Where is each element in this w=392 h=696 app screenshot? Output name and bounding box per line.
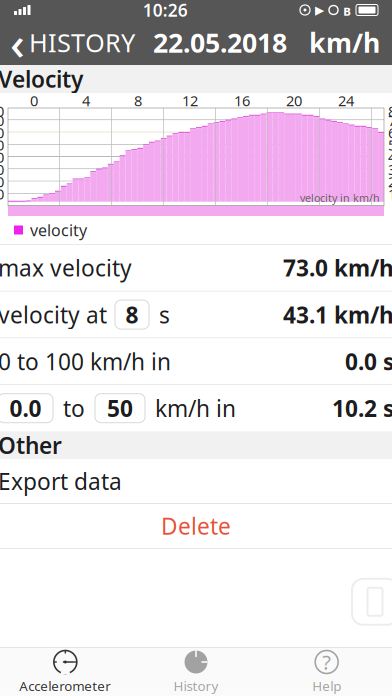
staticText: 20 (286, 91, 302, 110)
staticText: History (173, 677, 218, 695)
button[interactable]: History (131, 648, 261, 696)
staticText: km/h (309, 25, 380, 60)
staticText: HISTORY (29, 26, 135, 59)
staticText: 10.2 s (332, 393, 392, 423)
button[interactable]: km/h (297, 20, 392, 64)
staticText: Help (312, 677, 341, 695)
staticText: 24 (338, 91, 354, 110)
staticText: max velocity (0, 253, 132, 283)
staticText: 80 (0, 101, 4, 121)
staticText: ▶ (315, 3, 324, 17)
button[interactable]: 8 (115, 300, 149, 329)
button[interactable]: Export data (0, 459, 392, 503)
staticText: 16 (234, 91, 250, 110)
staticText: km/h in (155, 393, 236, 423)
staticText: 0.0 (9, 393, 41, 423)
staticText: velocity (30, 219, 87, 241)
staticText: ʙ (343, 0, 351, 20)
staticText: 50 (0, 135, 4, 154)
staticText: Export data (0, 466, 122, 496)
staticText: ‹ (10, 12, 25, 73)
staticText: Delete (161, 511, 231, 541)
staticText: 0.0 s (345, 346, 392, 376)
staticText: 60 (388, 123, 392, 142)
staticText: 10 (0, 184, 4, 203)
staticText: 43.1 km/h (283, 299, 392, 330)
staticText: 40 (0, 147, 4, 167)
staticText: Accelerometer (19, 677, 111, 695)
staticText: to (63, 393, 85, 423)
button[interactable]: Delete (0, 504, 392, 548)
staticText: 0 to 100 km/h in (0, 346, 171, 376)
staticText: 70 (388, 110, 392, 130)
staticText: 80 (388, 101, 392, 121)
staticText: 12 (182, 91, 198, 110)
staticText: 20 (388, 172, 392, 191)
staticText: 30 (0, 159, 4, 179)
staticText: 10 (388, 184, 392, 203)
staticText: 20 (0, 172, 4, 191)
staticText: 30 (388, 159, 392, 179)
staticText: 60 (0, 123, 4, 142)
staticText: 10:26 (143, 0, 188, 21)
staticText: 22.05.2018 (153, 25, 287, 60)
button[interactable]: ‹ (0, 20, 143, 64)
button[interactable]: 0.0 (0, 394, 53, 423)
staticText: 40 (388, 147, 392, 167)
staticText: velocity in km/h (300, 191, 380, 205)
staticText: 8 (125, 299, 138, 330)
staticText: 4 (82, 91, 90, 110)
button[interactable]: ? (261, 648, 392, 696)
staticText: Other (0, 430, 62, 460)
staticText: 8 (134, 91, 142, 110)
staticText: 50 (388, 135, 392, 154)
staticText: 50 (107, 393, 133, 423)
staticText: ? (322, 649, 331, 675)
staticText: 0 (30, 91, 38, 110)
button[interactable]: 50 (95, 394, 145, 423)
staticText: s (159, 299, 170, 330)
staticText: Velocity (0, 64, 83, 94)
staticText: velocity at (0, 299, 107, 330)
staticText: 70 (0, 110, 4, 130)
staticText: 73.0 km/h (283, 253, 392, 283)
button[interactable]: Accelerometer (0, 648, 131, 696)
